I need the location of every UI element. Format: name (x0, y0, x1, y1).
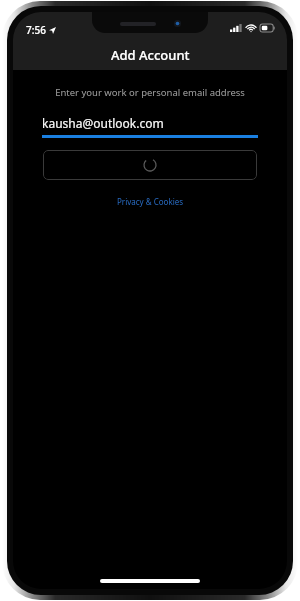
button[interactable]: Loading (43, 150, 257, 180)
staticText: kausha@outlook.com (42, 115, 164, 131)
staticText: Add Account (111, 46, 190, 64)
staticText: 7:56 (26, 23, 46, 37)
button[interactable]: Privacy & Cookies (111, 194, 190, 209)
staticText: Privacy & Cookies (117, 196, 184, 207)
button[interactable]: kausha@outlook.com (42, 115, 258, 138)
staticText: Enter your work or personal email addres… (41, 86, 259, 99)
